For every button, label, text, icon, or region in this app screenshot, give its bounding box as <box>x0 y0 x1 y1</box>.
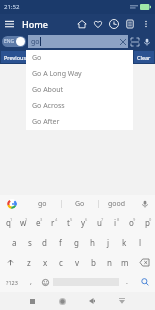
staticText: 3 <box>40 217 43 222</box>
button[interactable]: a <box>7 232 22 252</box>
staticText: Go Across <box>32 101 65 111</box>
button[interactable]: c <box>53 252 69 272</box>
button[interactable]: Go Across <box>26 98 133 114</box>
staticText: 7 <box>101 217 104 222</box>
button[interactable]: good <box>99 195 135 212</box>
staticText: m <box>121 257 129 268</box>
button[interactable]: Home <box>47 292 77 310</box>
staticText: y <box>81 217 86 228</box>
staticText: good <box>108 199 126 209</box>
staticText: 8 <box>117 217 120 222</box>
staticText: b <box>91 257 96 268</box>
staticText: n <box>107 257 112 268</box>
staticText: go <box>31 37 40 47</box>
button[interactable]: n <box>101 252 117 272</box>
button[interactable]: Clear text <box>117 36 128 47</box>
button[interactable]: x <box>37 252 53 272</box>
button[interactable]: Voice input <box>135 195 155 212</box>
button[interactable]: i <box>107 212 123 232</box>
button[interactable]: h <box>84 232 100 252</box>
staticText: d <box>42 237 47 248</box>
staticText: Clear <box>137 54 151 61</box>
button[interactable]: Go <box>62 195 98 212</box>
button[interactable]: More options <box>138 14 154 33</box>
button[interactable]: Google <box>0 195 24 212</box>
button[interactable]: m <box>117 252 133 272</box>
staticText: ?123 <box>6 279 18 286</box>
staticText: 2 <box>25 217 28 222</box>
button[interactable]: Go After <box>26 114 133 130</box>
staticText: Go After <box>32 117 60 127</box>
staticText: x <box>43 257 48 268</box>
button[interactable]: s <box>22 232 37 252</box>
button[interactable]: Search <box>134 272 155 292</box>
button[interactable]: p <box>139 212 155 232</box>
staticText: u <box>97 217 102 228</box>
button[interactable]: r <box>45 212 60 232</box>
button[interactable]: ?123 <box>0 272 23 292</box>
button[interactable]: . <box>119 272 134 292</box>
button[interactable]: f <box>52 232 68 252</box>
button[interactable]: Go A Long Way <box>26 66 133 82</box>
staticText: l <box>139 237 142 248</box>
button[interactable]: q <box>0 212 15 232</box>
button[interactable]: v <box>69 252 85 272</box>
staticText: Go About <box>32 85 64 95</box>
button[interactable]: e <box>30 212 45 232</box>
staticText: o <box>129 217 134 228</box>
button[interactable]: k <box>116 232 132 252</box>
staticText: v <box>75 257 80 268</box>
button[interactable]: Clear <box>134 51 154 63</box>
staticText: Previous <box>4 54 27 61</box>
button[interactable]: Menu <box>0 14 19 33</box>
staticText: z <box>27 257 31 268</box>
button[interactable]: Backspace <box>133 252 155 272</box>
staticText: go <box>38 199 47 209</box>
button[interactable]: go <box>28 35 128 48</box>
button[interactable]: History <box>106 14 122 33</box>
staticText: Go <box>32 53 42 63</box>
staticText: . <box>126 277 128 287</box>
button[interactable]: Shift <box>0 252 21 272</box>
button[interactable]: Back <box>77 292 107 310</box>
button[interactable]: Recents <box>17 292 47 310</box>
button[interactable]: Home <box>74 14 90 33</box>
staticText: k <box>122 237 127 248</box>
staticText: s <box>28 237 32 248</box>
button[interactable]: u <box>91 212 107 232</box>
staticText: f <box>59 237 62 248</box>
button[interactable]: d <box>37 232 52 252</box>
staticText: ENG <box>4 38 15 45</box>
button[interactable]: b <box>85 252 101 272</box>
staticText: e <box>36 217 41 228</box>
button[interactable]: Voice search <box>141 36 153 48</box>
button[interactable]: Emoji <box>38 272 53 292</box>
button[interactable]: go <box>24 195 61 212</box>
button[interactable]: z <box>21 252 37 272</box>
staticText: 1 <box>10 217 13 222</box>
button[interactable]: , <box>23 272 38 292</box>
staticText: 0 <box>149 217 152 222</box>
button[interactable]: y <box>75 212 91 232</box>
button[interactable]: Favorites <box>90 14 106 33</box>
staticText: i <box>114 217 117 228</box>
button[interactable]: l <box>132 232 148 252</box>
button[interactable]: o <box>123 212 139 232</box>
button[interactable]: w <box>15 212 30 232</box>
staticText: a <box>12 237 17 248</box>
staticText: q <box>6 217 11 228</box>
button[interactable]: Hide keyboard <box>107 292 137 310</box>
button[interactable]: Go <box>26 50 133 66</box>
staticText: 6 <box>85 217 88 222</box>
staticText: Go <box>75 199 85 209</box>
button[interactable]: Language toggle <box>2 36 26 47</box>
button[interactable]: g <box>68 232 84 252</box>
button[interactable]: t <box>60 212 75 232</box>
button[interactable]: List <box>122 14 138 33</box>
staticText: p <box>145 217 150 228</box>
button[interactable]: Go About <box>26 82 133 98</box>
button[interactable]: j <box>100 232 116 252</box>
button[interactable]: Scan <box>128 35 141 48</box>
button[interactable]: Previous <box>1 51 30 63</box>
